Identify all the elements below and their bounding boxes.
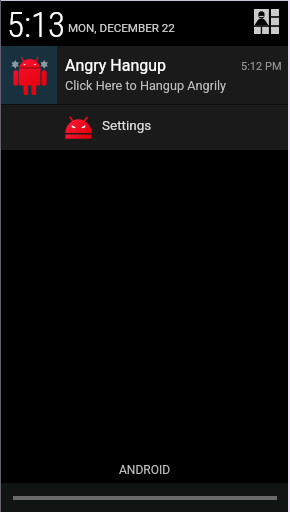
staticText: ANDROID bbox=[119, 463, 171, 477]
staticText: Settings bbox=[102, 117, 152, 133]
staticText: MON, DECEMBER 22 bbox=[68, 21, 175, 35]
staticText: Click Here to Hangup Angrily bbox=[65, 78, 227, 93]
staticText: Angry Hangup bbox=[65, 56, 167, 75]
button[interactable]: Angry Hangup bbox=[0, 46, 290, 104]
button[interactable]: Settings bbox=[0, 105, 290, 150]
staticText: 5:13 bbox=[7, 5, 66, 46]
button[interactable]: Quick settings bbox=[253, 8, 279, 34]
staticText: 5:12 PM bbox=[241, 60, 282, 73]
